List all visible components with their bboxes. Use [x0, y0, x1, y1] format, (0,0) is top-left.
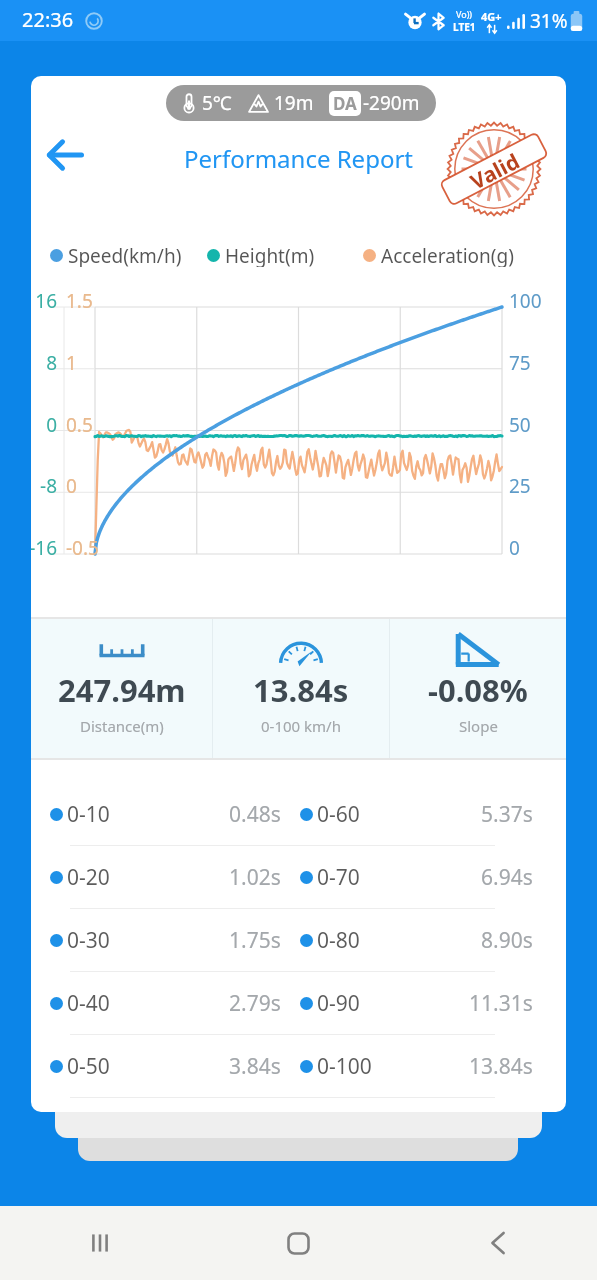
- staticText: Acceleration(g): [381, 243, 514, 267]
- staticText: -290m: [363, 90, 420, 116]
- button[interactable]: 0-20: [31, 846, 566, 908]
- button[interactable]: Back: [39, 133, 92, 177]
- staticText: 31%: [530, 8, 568, 34]
- staticText: 0-80: [317, 926, 360, 955]
- staticText: 0-60: [317, 800, 360, 829]
- button[interactable]: Back: [398, 1206, 597, 1280]
- staticText: Distance(m): [80, 716, 164, 736]
- staticText: 50: [509, 412, 561, 438]
- staticText: 0: [509, 535, 561, 561]
- staticText: Height(m): [225, 243, 315, 267]
- staticText: 1.02s: [229, 863, 281, 892]
- staticText: 0-20: [67, 863, 110, 892]
- staticText: 0.48s: [229, 800, 281, 829]
- staticText: 0: [66, 473, 106, 499]
- staticText: 0-30: [67, 926, 110, 955]
- staticText: 0-50: [67, 1052, 110, 1081]
- button[interactable]: Recent apps: [0, 1206, 199, 1280]
- staticText: 0-40: [67, 989, 110, 1018]
- staticText: 0.5: [66, 412, 106, 438]
- staticText: Speed(km/h): [68, 243, 182, 267]
- staticText: -8: [31, 473, 57, 499]
- staticText: Vo)): [456, 8, 473, 20]
- staticText: 0-10: [67, 800, 110, 829]
- staticText: Performance Report: [31, 142, 566, 175]
- button[interactable]: 0-50: [31, 1035, 566, 1097]
- button[interactable]: -0.08%: [390, 619, 566, 758]
- staticText: LTE1: [453, 20, 476, 34]
- staticText: 3.84s: [229, 1052, 281, 1081]
- staticText: 0-100 km/h: [261, 716, 341, 736]
- staticText: 25: [509, 473, 561, 499]
- button[interactable]: 0-40: [31, 972, 566, 1034]
- staticText: 0: [31, 412, 57, 438]
- staticText: 2.79s: [229, 989, 281, 1018]
- button[interactable]: 0-30: [31, 909, 566, 971]
- button[interactable]: 0-10: [31, 783, 566, 845]
- staticText: -16: [31, 535, 57, 561]
- staticText: 0-100: [317, 1052, 372, 1081]
- staticText: 1.5: [66, 288, 106, 314]
- staticText: 8: [31, 350, 57, 376]
- staticText: 5℃: [202, 90, 232, 116]
- staticText: 247.94m: [58, 669, 186, 711]
- staticText: 0-90: [317, 989, 360, 1018]
- staticText: 1: [66, 350, 106, 376]
- button[interactable]: Home: [199, 1206, 398, 1280]
- button[interactable]: 13.84s: [213, 619, 389, 758]
- staticText: 6.94s: [481, 863, 533, 892]
- staticText: 16: [31, 288, 57, 314]
- staticText: 1.75s: [229, 926, 281, 955]
- button[interactable]: 5℃: [182, 85, 420, 121]
- staticText: 4G+: [481, 9, 502, 24]
- staticText: 75: [509, 350, 561, 376]
- staticText: 13.84s: [253, 669, 349, 711]
- staticText: DA: [333, 92, 357, 115]
- button[interactable]: 247.94m: [31, 619, 212, 758]
- staticText: 11.31s: [469, 989, 533, 1018]
- staticText: Slope: [459, 716, 498, 736]
- staticText: 19m: [274, 90, 314, 116]
- staticText: 8.90s: [481, 926, 533, 955]
- staticText: 5.37s: [481, 800, 533, 829]
- staticText: 100: [509, 288, 561, 314]
- staticText: 0-70: [317, 863, 360, 892]
- staticText: Valid: [465, 147, 525, 196]
- staticText: -0.08%: [428, 669, 528, 711]
- staticText: -0.5: [66, 535, 106, 561]
- staticText: 13.84s: [469, 1052, 533, 1081]
- staticText: 22:36: [22, 6, 74, 33]
